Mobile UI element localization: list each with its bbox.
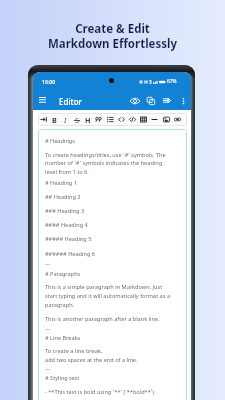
staticText: --- — [45, 260, 51, 268]
staticText: 3 — [149, 79, 152, 85]
button[interactable]: Horizontal rule — [149, 113, 160, 126]
button[interactable]: Italic — [60, 113, 71, 126]
button[interactable]: Link — [172, 113, 183, 126]
staticText: #### Heading 4 — [45, 221, 88, 229]
staticText: This is a simple paragraph in Markdown. … — [45, 283, 163, 291]
staticText: # Heading 1 — [45, 179, 77, 187]
staticText: # Headings — [45, 137, 75, 145]
staticText: 16:00 — [42, 78, 56, 85]
button[interactable]: Outline — [159, 91, 175, 110]
button[interactable]: Preview — [127, 91, 143, 110]
staticText: add two spaces at the end of a line. — [45, 356, 138, 364]
staticText: H — [85, 115, 91, 125]
button[interactable]: Copy — [143, 91, 159, 110]
staticText: --- — [45, 365, 51, 373]
button[interactable]: List — [105, 113, 116, 126]
staticText: To create a line break, — [45, 347, 103, 355]
button[interactable]: Code block — [127, 113, 138, 126]
button[interactable]: Heading — [82, 113, 93, 126]
staticText: level from 1 to 6. — [45, 168, 89, 176]
staticText: To create headings/titles, use `#` symbo… — [45, 151, 166, 159]
staticText: B — [52, 115, 57, 125]
button[interactable]: Inline code — [116, 113, 127, 126]
button[interactable]: Strikethrough — [71, 113, 82, 126]
staticText: ###### Heading 6 — [45, 250, 96, 258]
button[interactable]: Table — [138, 113, 149, 126]
staticText: This is another paragraph after a blank … — [45, 315, 160, 323]
button[interactable]: Image — [161, 113, 172, 126]
staticText: Create & Edit — [0, 21, 225, 37]
button[interactable]: Navigation menu — [33, 90, 52, 110]
staticText: Editor — [59, 96, 82, 107]
staticText: I — [64, 115, 67, 125]
button[interactable]: Quote — [93, 113, 104, 126]
staticText: # Styling text — [45, 374, 80, 382]
staticText: ##### Heading 5 — [45, 235, 92, 243]
staticText: # Paragraphs — [45, 270, 81, 278]
staticText: paragraph. — [45, 301, 75, 309]
staticText: ## Heading 2 — [45, 193, 81, 201]
staticText: - **This text is bold using `**` (`**bol… — [45, 388, 155, 396]
staticText: Markdown Effortlessly — [0, 36, 225, 52]
staticText: start typing and it will automatically f… — [45, 292, 171, 300]
staticText: --- — [45, 325, 51, 333]
staticText: # Line Breaks — [45, 334, 81, 342]
staticText: 67% — [167, 78, 177, 85]
button[interactable]: Indent — [38, 113, 49, 126]
staticText: ### Heading 3 — [45, 207, 85, 215]
staticText: number of `#` symbols indicates the head… — [45, 159, 163, 167]
button[interactable]: Bold — [49, 113, 60, 126]
button[interactable]: More options — [175, 91, 191, 110]
staticText: S — [75, 115, 79, 125]
